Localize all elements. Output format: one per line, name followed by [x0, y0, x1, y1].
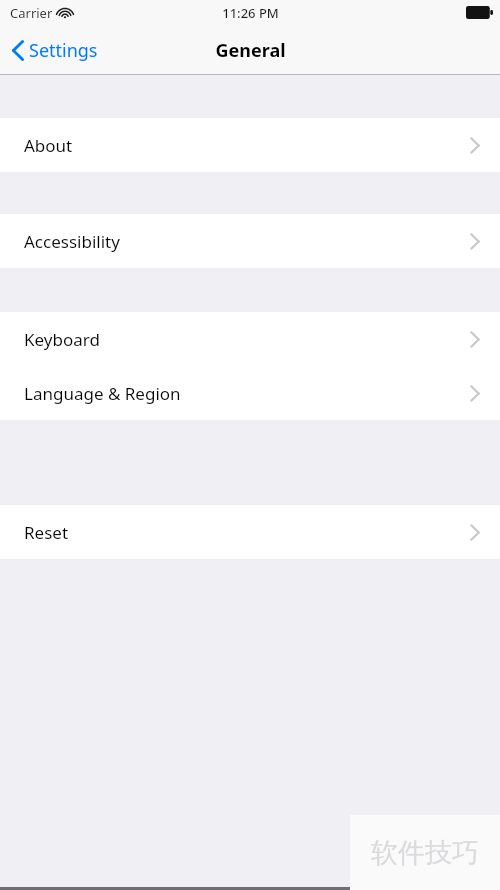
button[interactable]: Settings — [0, 32, 108, 69]
other: Open Language & Region — [470, 385, 480, 402]
other: Open Keyboard — [470, 331, 480, 348]
button[interactable]: Language & Region — [0, 366, 500, 420]
button[interactable]: Keyboard — [0, 312, 500, 366]
staticText: Carrier — [10, 4, 53, 22]
other: Open Accessibility — [470, 233, 480, 250]
button[interactable]: Accessibility — [0, 214, 500, 268]
staticText: 软件技巧 — [371, 836, 479, 870]
button[interactable]: Reset — [0, 505, 500, 559]
button[interactable]: About — [0, 118, 500, 172]
other: Open Reset — [470, 524, 480, 541]
staticText: Language & Region — [24, 382, 181, 405]
staticText: Accessibility — [24, 230, 120, 253]
staticText: About — [24, 134, 73, 157]
staticText: General — [215, 38, 286, 63]
other: Open About — [470, 137, 480, 154]
staticText: Reset — [24, 521, 69, 544]
staticText: Settings — [29, 38, 98, 63]
staticText: Keyboard — [24, 328, 100, 351]
staticText: 11:26 PM — [222, 4, 279, 22]
